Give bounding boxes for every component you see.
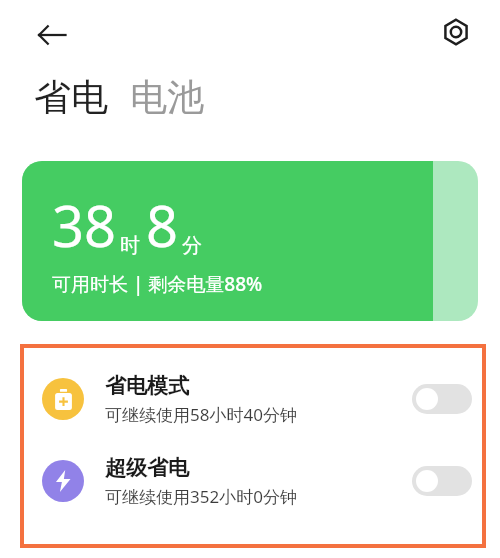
staticText: 可继续使用352小时0分钟 — [105, 485, 297, 508]
staticText: 省电 — [34, 74, 108, 121]
staticText: 38 — [52, 187, 117, 263]
staticText: 省电模式 — [105, 373, 189, 399]
button[interactable]: Back — [28, 11, 76, 59]
button[interactable]: 省电 — [34, 74, 108, 121]
button[interactable] — [412, 384, 472, 414]
staticText: 超级省电 — [105, 455, 189, 481]
staticText: 可继续使用58小时40分钟 — [105, 403, 297, 426]
staticText: 可用时长 | 剩余电量88% — [52, 271, 263, 297]
button[interactable]: 省电模式 — [20, 370, 486, 428]
button[interactable] — [412, 466, 472, 496]
button[interactable]: 电池 — [130, 74, 204, 121]
staticText: 分 — [182, 233, 202, 258]
staticText: 时 — [120, 233, 140, 258]
staticText: 8 — [146, 187, 179, 263]
button[interactable]: 超级省电 — [20, 452, 486, 510]
staticText: 电池 — [130, 74, 204, 121]
button[interactable]: Settings — [432, 8, 480, 56]
button[interactable]: 38 — [22, 161, 478, 321]
